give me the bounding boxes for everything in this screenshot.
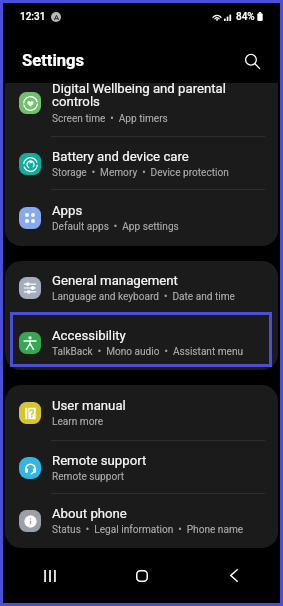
staticText: General management	[52, 273, 178, 288]
button[interactable]: Accessibility	[5, 315, 278, 370]
button[interactable]: Home	[96, 548, 188, 603]
button[interactable]: Apps	[5, 190, 278, 246]
button[interactable]: Remote support	[5, 441, 278, 494]
button[interactable]: User manual	[5, 385, 278, 441]
staticText: Accessibility	[52, 328, 126, 343]
staticText: Learn more	[52, 416, 104, 428]
staticText: Apps	[52, 203, 83, 218]
staticText: Screen time • App timers	[52, 113, 168, 125]
staticText: Default apps • App settings	[52, 221, 179, 233]
staticText: TalkBack • Mono audio • Assistant menu	[52, 346, 244, 358]
staticText: About phone	[52, 506, 127, 521]
staticText: 12:31	[20, 11, 46, 23]
button[interactable]: Back	[188, 548, 280, 603]
staticText: User manual	[52, 398, 126, 413]
staticText: 84%	[236, 11, 255, 23]
staticText: Digital Wellbeing and parental controls	[52, 83, 264, 110]
button[interactable]: General management	[5, 261, 278, 315]
button[interactable]: Battery and device care	[5, 137, 278, 190]
staticText: Battery and device care	[52, 149, 189, 164]
button[interactable]: About phone	[5, 494, 278, 548]
staticText: Settings	[22, 51, 85, 70]
staticText: Remote support	[52, 453, 147, 468]
button[interactable]: Digital Wellbeing and parental controls	[5, 83, 278, 137]
staticText: Status • Legal information • Phone name	[52, 524, 244, 536]
staticText: Remote support	[52, 471, 125, 483]
button[interactable]: Recent apps	[3, 548, 96, 603]
staticText: Storage • Memory • Device protection	[52, 167, 229, 179]
button[interactable]: Search	[238, 47, 266, 75]
staticText: Language and keyboard • Date and time	[52, 291, 235, 303]
